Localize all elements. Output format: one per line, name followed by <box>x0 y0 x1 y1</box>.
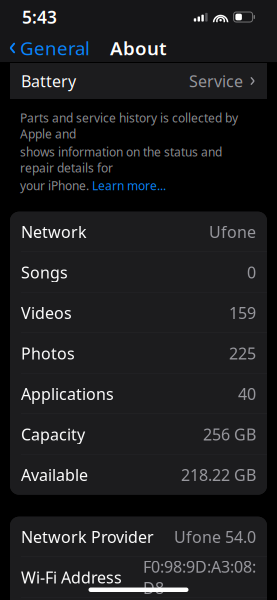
staticText: 0 <box>247 262 256 283</box>
button[interactable]: Battery <box>10 63 267 99</box>
staticText: 159 <box>229 302 256 323</box>
staticText: Capacity <box>21 424 85 445</box>
staticText: 5:43 <box>22 5 57 28</box>
staticText: Videos <box>21 302 72 323</box>
staticText: 40 <box>238 383 256 404</box>
staticText: Available <box>21 464 88 485</box>
staticText: 218.22 GB <box>181 464 256 485</box>
staticText: Ufone <box>209 221 256 242</box>
button[interactable]: Wi-Fi Address <box>10 557 267 598</box>
button[interactable]: General <box>0 34 98 62</box>
staticText: Wi-Fi Address <box>21 567 122 588</box>
staticText: Service <box>189 70 243 92</box>
button[interactable]: Songs <box>10 252 267 293</box>
staticText: Photos <box>21 343 75 364</box>
staticText: shows information on the status and repa… <box>20 144 222 176</box>
staticText: F0:98:9D:A3:08:D8 <box>143 556 256 598</box>
staticText: About <box>110 36 167 60</box>
button[interactable]: Photos <box>10 333 267 374</box>
staticText: Network Provider <box>21 526 154 547</box>
staticText: Applications <box>21 383 114 404</box>
staticText: Parts and service history is collected b… <box>20 110 238 142</box>
button[interactable]: Available <box>10 455 267 495</box>
button[interactable]: Videos <box>10 293 267 333</box>
staticText: 256 GB <box>203 424 256 445</box>
button[interactable]: Applications <box>10 374 267 414</box>
staticText: Songs <box>21 262 68 283</box>
staticText: your iPhone. <box>20 178 92 194</box>
button[interactable]: Network <box>10 212 267 252</box>
staticText: Network <box>21 221 87 242</box>
staticText: 225 <box>229 343 256 364</box>
staticText: Battery <box>21 70 76 92</box>
staticText: Learn more... <box>92 178 166 194</box>
staticText: General <box>20 36 90 60</box>
button[interactable]: Learn more... <box>92 178 166 194</box>
button[interactable]: Capacity <box>10 414 267 455</box>
button[interactable]: Network Provider <box>10 517 267 557</box>
staticText: Ufone 54.0 <box>174 526 256 547</box>
